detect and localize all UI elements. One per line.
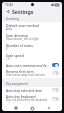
button[interactable]: Home (29, 105, 35, 111)
button[interactable]: Toggle off (52, 97, 59, 101)
staticText: 10:42 (5, 3, 14, 7)
staticText: Keys are pressed on the keyboard when th… (6, 98, 50, 103)
staticText: Number of scans (6, 43, 33, 47)
button[interactable]: Back (46, 105, 52, 111)
staticText: Scan moves away from last item (6, 73, 46, 77)
button[interactable]: Number of scans (2, 42, 62, 52)
button[interactable]: Back (5, 8, 11, 14)
button[interactable]: Scan direction (2, 32, 62, 42)
button[interactable]: Auto-key keyboard (2, 93, 62, 104)
button[interactable]: Auto scan cameras and faces (2, 62, 62, 68)
button[interactable]: Toggle on (52, 63, 59, 67)
staticText: Scanning (6, 17, 19, 21)
button[interactable]: Toggle off (52, 71, 59, 75)
staticText: Auto-key selected item (6, 88, 42, 92)
staticText: Scan direction (6, 33, 29, 37)
staticText: Reverse first item (6, 69, 34, 73)
staticText: Key assignment (6, 82, 28, 86)
staticText: Default scan method (6, 23, 39, 27)
staticText: Auto-key keyboard (6, 94, 36, 98)
staticText: Auto scan cameras and faces (6, 63, 50, 67)
staticText: Scan speed (6, 53, 24, 57)
button[interactable]: Auto-key selected item (2, 87, 62, 93)
staticText: Auto (6, 27, 13, 31)
staticText: 2 (6, 47, 8, 51)
button[interactable]: Recents (13, 105, 19, 111)
staticText: 1.0 (6, 57, 10, 61)
button[interactable]: Scan speed (2, 52, 62, 62)
button[interactable]: Default scan method (2, 22, 62, 32)
staticText: Row-column, left to right (6, 37, 39, 41)
staticText: Settings (12, 8, 34, 15)
button[interactable]: Toggle off (52, 88, 59, 92)
button[interactable]: Reverse first item (2, 68, 62, 78)
